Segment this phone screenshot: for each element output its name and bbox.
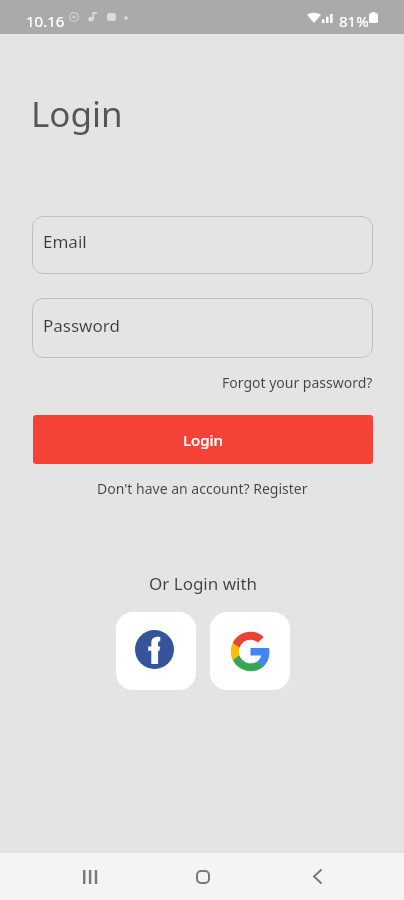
staticText: Login bbox=[183, 430, 223, 450]
button[interactable]: Back bbox=[293, 853, 341, 900]
staticText: Don't have an account? Register bbox=[97, 479, 308, 498]
button[interactable]: Login with Facebook bbox=[116, 612, 196, 690]
staticText: Login bbox=[31, 90, 123, 138]
button[interactable]: Login with Google bbox=[210, 612, 290, 690]
staticText: Or Login with bbox=[149, 572, 258, 595]
staticText: Forgot your password? bbox=[222, 373, 373, 392]
button[interactable]: Home bbox=[179, 853, 227, 900]
staticText: Password bbox=[43, 314, 120, 337]
button[interactable]: Password bbox=[32, 298, 373, 358]
button[interactable]: Forgot your password? bbox=[214, 368, 381, 396]
staticText: 10.16 bbox=[26, 11, 65, 31]
button[interactable]: Recent apps bbox=[66, 853, 114, 900]
button[interactable]: Don't have an account? Register bbox=[89, 474, 315, 502]
button[interactable]: Email bbox=[32, 216, 373, 274]
staticText: 81% bbox=[339, 11, 369, 31]
staticText: Email bbox=[43, 230, 87, 253]
button[interactable]: Login bbox=[33, 415, 373, 464]
